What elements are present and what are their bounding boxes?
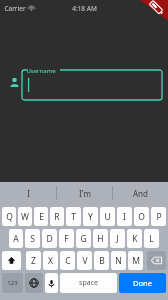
staticText: K — [132, 233, 138, 245]
button[interactable]: K — [127, 229, 142, 248]
button[interactable]: Dictation — [45, 273, 58, 293]
button[interactable]: Done — [119, 273, 166, 293]
button[interactable]: A — [9, 229, 23, 248]
button[interactable]: E — [34, 207, 48, 226]
staticText: P — [156, 211, 162, 223]
staticText: I'm — [79, 188, 91, 199]
button[interactable]: F — [59, 229, 74, 248]
button[interactable]: L — [144, 229, 159, 248]
button[interactable]: V — [77, 251, 92, 270]
staticText: M — [132, 255, 140, 267]
staticText: And — [133, 188, 148, 199]
staticText: U — [104, 211, 111, 223]
button[interactable]: Switch keyboard — [25, 273, 43, 293]
button[interactable]: Q — [2, 207, 16, 226]
staticText: H — [97, 233, 104, 245]
staticText: Username — [26, 67, 56, 75]
staticText: Done — [133, 278, 152, 288]
button[interactable]: I — [0, 182, 56, 204]
button[interactable]: space — [60, 273, 117, 293]
staticText: I — [27, 188, 30, 199]
staticText: O — [138, 211, 145, 223]
staticText: F — [64, 233, 69, 245]
staticText: 4:18 AM — [72, 4, 97, 13]
button[interactable]: 123 — [2, 273, 23, 293]
staticText: space — [79, 278, 98, 288]
staticText: X — [48, 255, 53, 267]
button[interactable]: J — [110, 229, 125, 248]
button[interactable]: D — [42, 229, 57, 248]
staticText: B — [99, 255, 105, 267]
button[interactable]: I'm — [57, 182, 112, 204]
staticText: L — [149, 233, 154, 245]
button[interactable]: I — [117, 207, 132, 226]
button[interactable]: W — [18, 207, 32, 226]
button[interactable]: U — [100, 207, 115, 226]
staticText: G — [80, 233, 87, 245]
button[interactable]: Y — [83, 207, 98, 226]
staticText: Z — [31, 255, 36, 267]
staticText: V — [82, 255, 88, 267]
button[interactable]: B — [94, 251, 109, 270]
staticText: Carrier — [4, 4, 26, 13]
staticText: C — [65, 255, 71, 267]
button[interactable]: S — [25, 229, 40, 248]
staticText: E — [39, 211, 44, 223]
staticText: S — [30, 233, 35, 245]
button[interactable]: G — [76, 229, 91, 248]
staticText: J — [116, 233, 119, 245]
staticText: D — [46, 233, 53, 245]
staticText: I — [123, 211, 126, 223]
staticText: 123 — [7, 279, 18, 287]
staticText: N — [115, 255, 122, 267]
button[interactable]: C — [60, 251, 75, 270]
staticText: Y — [88, 211, 93, 223]
button[interactable]: H — [93, 229, 108, 248]
button[interactable]: M — [128, 251, 143, 270]
button[interactable]: N — [111, 251, 126, 270]
staticText: W — [21, 211, 29, 223]
button[interactable]: And — [113, 182, 168, 204]
staticText: A — [13, 233, 19, 245]
button[interactable]: R — [50, 207, 64, 226]
button[interactable]: Z — [26, 251, 41, 270]
button[interactable]: O — [134, 207, 149, 226]
button[interactable]: Shift — [2, 251, 21, 270]
button[interactable]: T — [66, 207, 81, 226]
button[interactable]: X — [43, 251, 58, 270]
staticText: Q — [6, 211, 13, 223]
staticText: T — [71, 211, 76, 223]
button[interactable]: Backspace — [147, 251, 166, 270]
button[interactable]: P — [151, 207, 166, 226]
staticText: R — [54, 211, 60, 223]
